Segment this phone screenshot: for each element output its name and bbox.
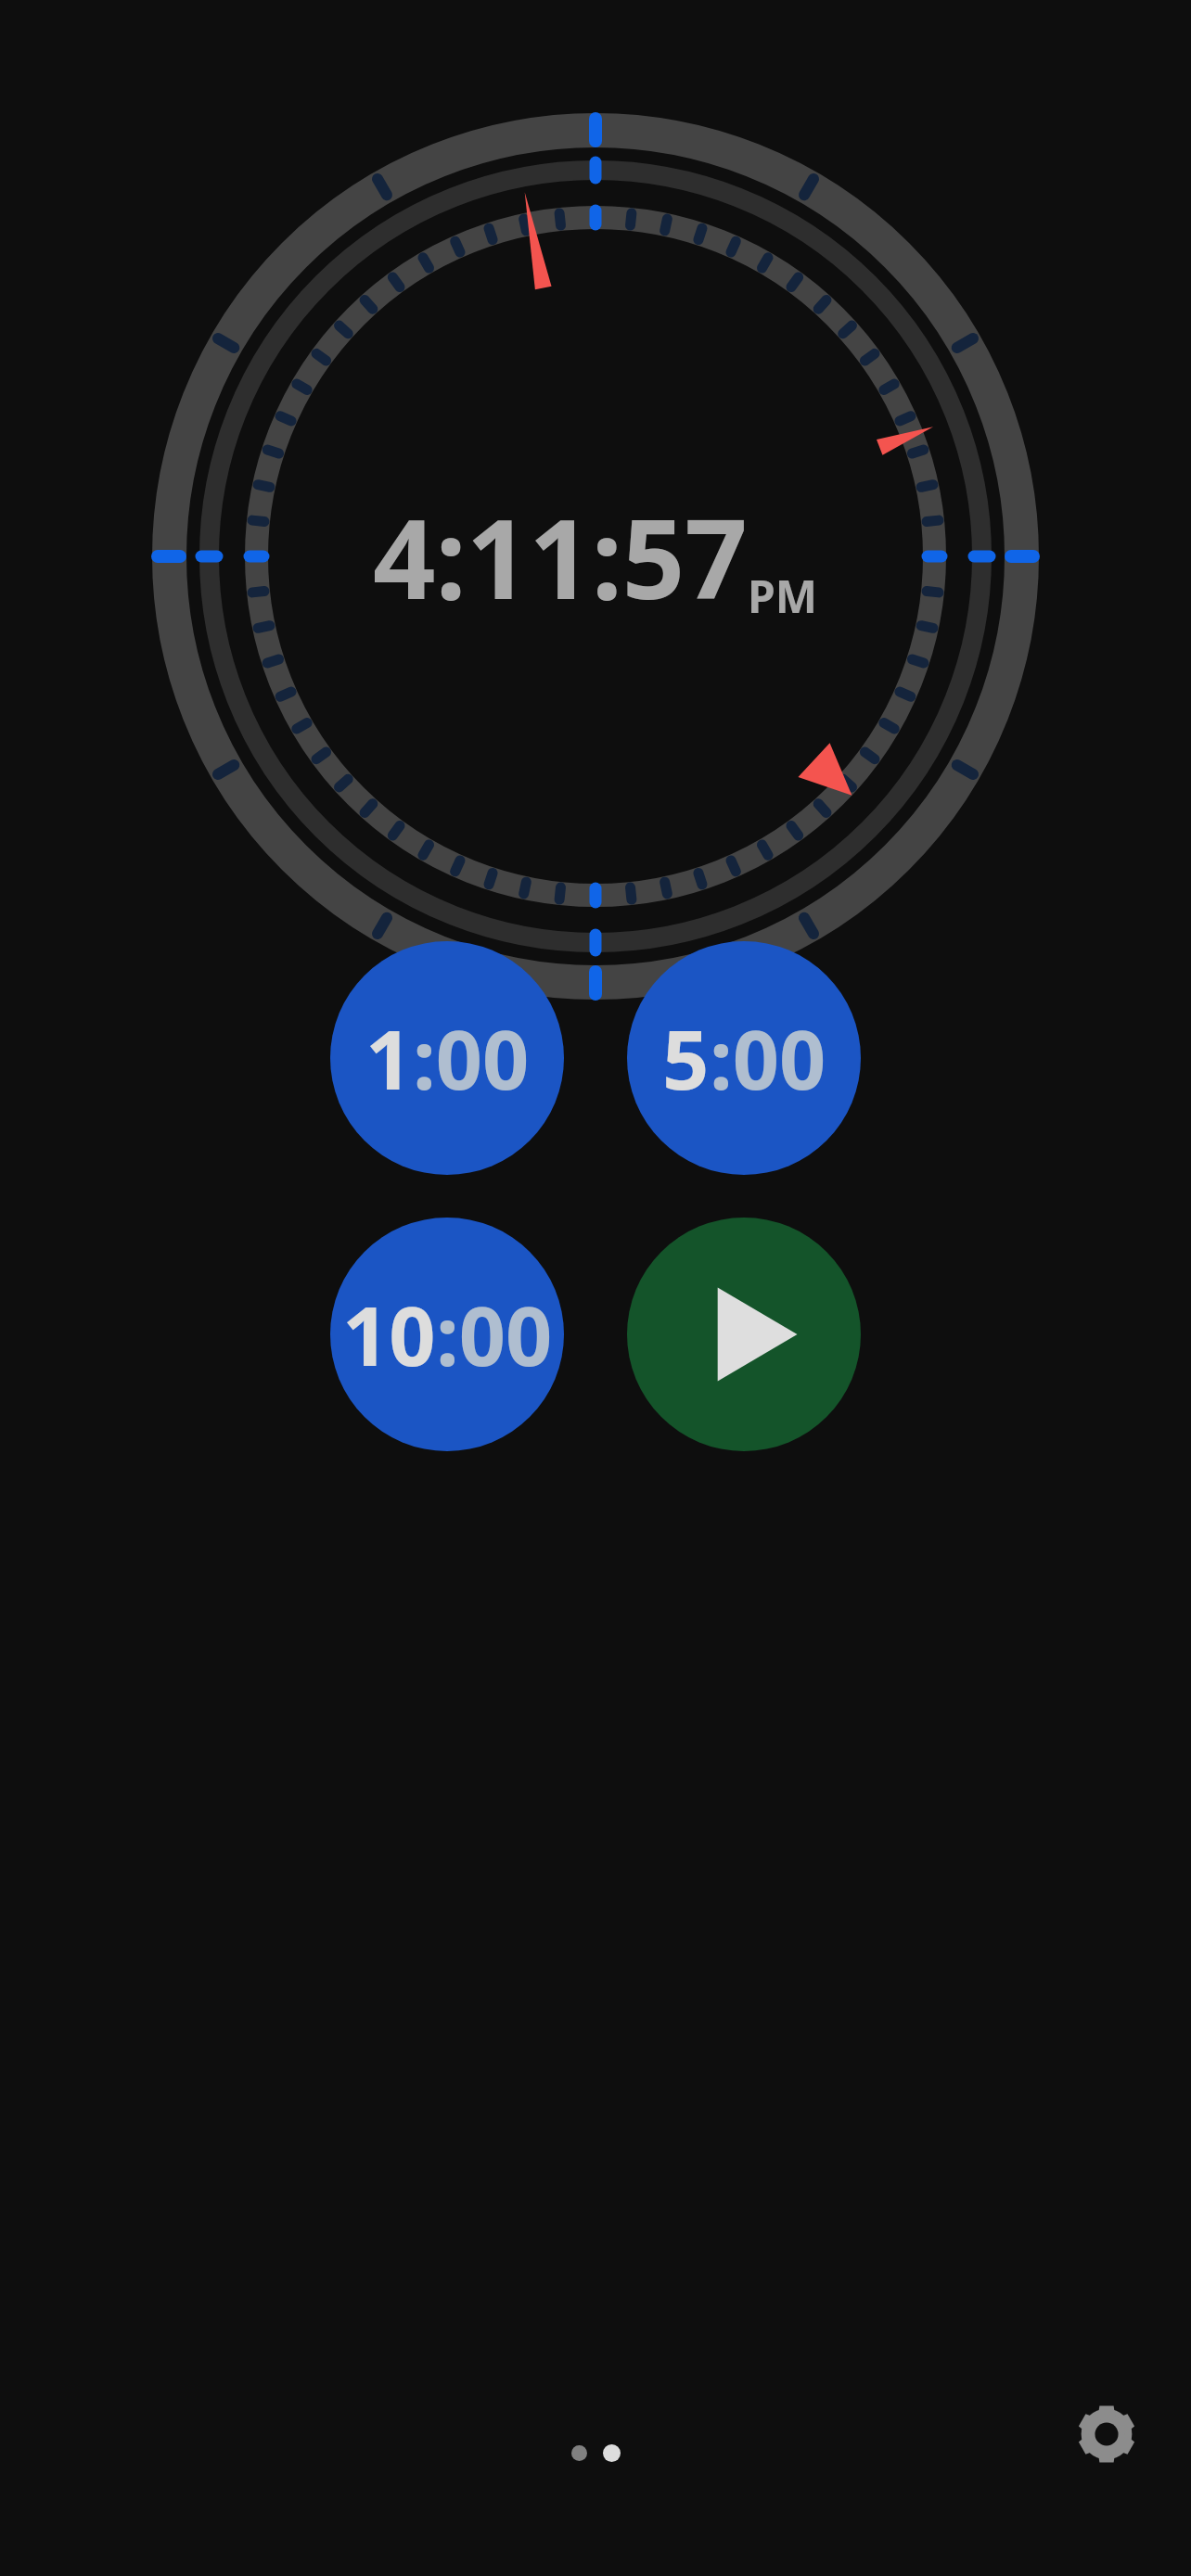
button[interactable]: 1: [330, 941, 564, 1175]
staticText: :00: [710, 1002, 826, 1114]
staticText: 4:11:57: [373, 482, 748, 631]
staticText: :00: [436, 1279, 553, 1390]
button[interactable]: Start: [627, 1218, 861, 1451]
button[interactable]: Settings: [1067, 2394, 1146, 2474]
button[interactable]: 5: [627, 941, 861, 1175]
staticText: 5: [662, 1002, 710, 1114]
staticText: 10: [342, 1279, 436, 1390]
button[interactable]: 10: [330, 1218, 564, 1451]
staticText: :00: [413, 1002, 530, 1114]
staticText: PM: [748, 566, 818, 626]
staticText: 1: [365, 1002, 413, 1114]
